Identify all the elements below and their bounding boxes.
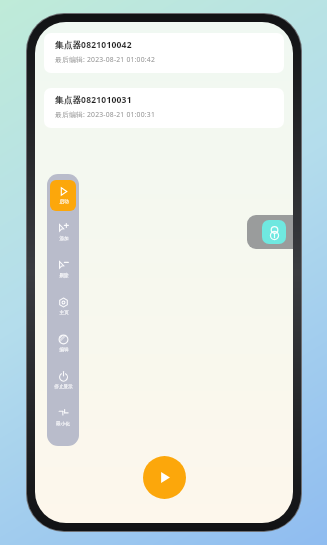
- button[interactable]: 启动: [50, 180, 76, 211]
- button[interactable]: 最小化: [50, 402, 76, 433]
- button[interactable]: 删除: [50, 254, 76, 285]
- button[interactable]: 开始: [143, 456, 186, 499]
- staticText: 启动: [59, 199, 69, 205]
- staticText: 添加: [59, 236, 69, 242]
- button[interactable]: 添加: [50, 217, 76, 248]
- staticText: 集点器0821010042: [55, 39, 132, 51]
- staticText: 最后编辑: 2023-08-21 01:00:31: [55, 110, 155, 119]
- staticText: 编辑: [59, 347, 69, 353]
- button[interactable]: 集点器0821010042: [44, 33, 284, 73]
- button[interactable]: 展开面板: [247, 215, 293, 249]
- button[interactable]: 主页: [50, 291, 76, 322]
- button[interactable]: 停止显示: [50, 365, 76, 396]
- staticText: 最后编辑: 2023-08-21 01:00:42: [55, 55, 155, 64]
- staticText: 停止显示: [54, 384, 73, 390]
- staticText: 最小化: [56, 421, 70, 427]
- staticText: 主页: [59, 310, 69, 316]
- button[interactable]: 集点器0821010031: [44, 88, 284, 128]
- staticText: 集点器0821010031: [55, 94, 132, 106]
- staticText: 删除: [59, 273, 69, 279]
- button[interactable]: 编辑: [50, 328, 76, 359]
